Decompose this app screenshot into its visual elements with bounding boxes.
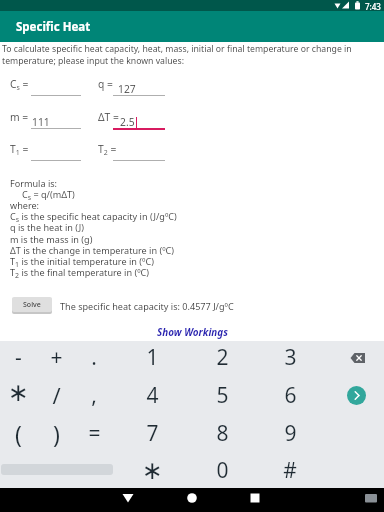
staticText: / <box>52 380 61 410</box>
staticText: Cs is the specific heat capacity in (J/g… <box>10 210 177 224</box>
staticText: ΔT is the change in temperature in (ºC) <box>10 244 175 256</box>
staticText: 127 <box>118 82 136 96</box>
staticText: q = <box>98 77 113 91</box>
staticText: 4 <box>146 381 159 410</box>
staticText: = <box>88 419 101 448</box>
staticText: 0 <box>216 456 229 485</box>
staticText: Specific Heat <box>16 19 91 35</box>
staticText: 3 <box>284 343 297 372</box>
staticText: 7:43 <box>365 1 381 12</box>
staticText: - <box>15 343 22 372</box>
staticText: 111 <box>32 115 50 129</box>
staticText: 9 <box>284 419 297 448</box>
staticText: Cs = <box>10 77 29 92</box>
staticText: 6 <box>284 381 297 410</box>
staticText: 2 <box>216 343 229 372</box>
staticText: T1 = <box>10 142 29 157</box>
staticText: ΔT = <box>98 110 119 124</box>
staticText: q is the heat in (J) <box>10 221 85 233</box>
staticText: Formula is: <box>10 177 58 189</box>
staticText: Solve <box>23 300 41 310</box>
staticText: m = <box>10 110 29 124</box>
staticText: , <box>91 381 97 410</box>
staticText: To calculate specific heat capacity, hea… <box>2 43 352 66</box>
staticText: T2 is the final temperature in (ºC) <box>10 266 150 280</box>
staticText: ∗ <box>142 456 163 485</box>
staticText: Cs = q/(mΔT) <box>22 188 75 202</box>
staticText: The specific heat capacity is: 0.4577 J/… <box>60 300 234 312</box>
staticText: T2 = <box>98 142 117 157</box>
staticText: 2.5 <box>120 115 135 129</box>
staticText: m is the mass in (g) <box>10 233 93 245</box>
staticText: ) <box>53 418 60 449</box>
staticText: 7 <box>146 419 159 448</box>
staticText: 8 <box>216 419 229 448</box>
staticText: # <box>283 456 297 485</box>
staticText: + <box>50 343 63 372</box>
staticText: where: <box>10 199 40 211</box>
staticText: 1 <box>146 343 159 372</box>
staticText: ∗ <box>8 378 29 407</box>
staticText: T1 is the initial temperature in (ºC) <box>10 255 154 269</box>
staticText: Show Workings <box>157 325 228 338</box>
staticText: 5 <box>216 381 229 410</box>
staticText: . <box>91 343 97 372</box>
staticText: ( <box>15 418 22 449</box>
